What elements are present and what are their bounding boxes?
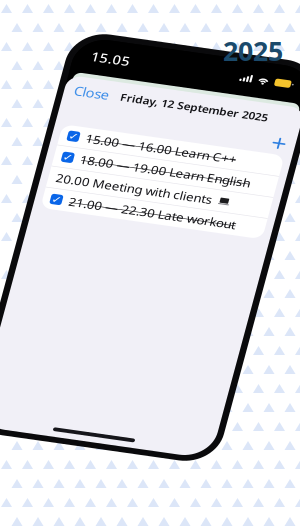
staticText: 18.00 — 19.00 Learn English — [37, 126, 195, 142]
staticText: 21.00 — 22.30 Late workout — [37, 171, 192, 187]
staticText: ✓ — [21, 105, 30, 117]
button[interactable]: ✓ — [13, 100, 219, 123]
staticText: 15.00 — 16.00 Learn C++ — [37, 103, 177, 119]
staticText: 20.00 Meeting with clients — [20, 148, 165, 164]
button[interactable]: Add event — [199, 78, 223, 98]
button[interactable]: Close — [6, 49, 57, 77]
staticText: 2025 — [223, 33, 283, 68]
button[interactable]: ✓ — [13, 168, 219, 190]
button[interactable]: 20.00 Meeting with clients — [13, 145, 219, 168]
staticText: ✓ — [21, 173, 30, 185]
staticText: Close — [15, 54, 48, 72]
staticText: Friday, 12 September 2025 — [58, 56, 195, 70]
button[interactable]: ✓ — [13, 123, 219, 145]
staticText: 15.05 — [22, 16, 58, 34]
